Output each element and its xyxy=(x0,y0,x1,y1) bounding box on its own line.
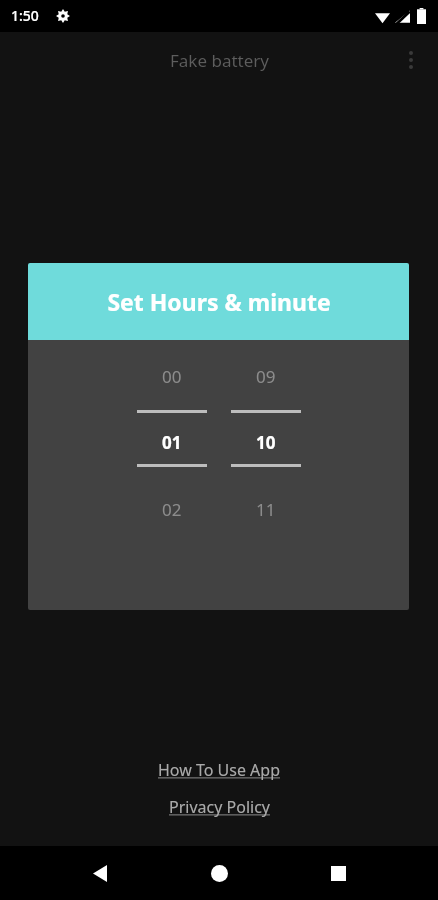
button[interactable]: More options xyxy=(391,40,431,80)
button[interactable]: Privacy Policy xyxy=(161,792,278,822)
staticText: 09 xyxy=(256,365,276,387)
staticText: Set Hours & minute xyxy=(107,286,331,317)
button[interactable]: Home xyxy=(191,846,247,900)
button[interactable]: Number picker xyxy=(135,340,209,540)
button[interactable]: Number picker xyxy=(229,340,303,540)
staticText: 02 xyxy=(162,498,182,520)
staticText: How To Use App xyxy=(158,759,281,781)
staticText: 1:50 xyxy=(11,6,39,25)
staticText: 10 xyxy=(256,431,276,453)
button[interactable]: How To Use App xyxy=(150,755,289,785)
button[interactable]: Back xyxy=(72,846,128,900)
staticText: 00 xyxy=(162,365,182,387)
staticText: Fake battery xyxy=(170,49,269,72)
staticText: 11 xyxy=(256,498,276,520)
staticText: 01 xyxy=(162,431,182,453)
button[interactable]: Recent apps xyxy=(310,846,366,900)
staticText: Privacy Policy xyxy=(169,796,270,818)
